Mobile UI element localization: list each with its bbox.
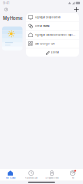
staticText: My Home <box>3 16 23 21</box>
staticText: Yo <box>72 176 74 179</box>
button[interactable]: Notifications <box>3 6 9 13</box>
button[interactable]: Agregar tarjeta de control rápido <box>26 31 79 39</box>
staticText: Automatizar <box>25 176 38 179</box>
button[interactable]: Leer código QR <box>26 39 79 48</box>
staticText: Crear escena <box>35 24 49 28</box>
button[interactable]: Add <box>73 6 80 13</box>
staticText: 9:41 <box>3 1 9 5</box>
button[interactable]: Crear escena <box>26 22 79 30</box>
button[interactable]: Automatizar <box>21 169 42 181</box>
button[interactable]: Agregar Dispositivo <box>26 13 79 21</box>
staticText: Editar <box>51 51 59 54</box>
button[interactable]: Dispositivos <box>41 169 62 181</box>
button[interactable]: Yo <box>62 169 83 181</box>
staticText: Agregar tarjeta de control rápido <box>35 33 76 36</box>
staticText: Mi Casa <box>6 176 15 179</box>
button[interactable]: My Home <box>3 15 23 22</box>
staticText: Dispositivos <box>45 176 58 179</box>
staticText: Agregar Dispositivo <box>35 16 61 19</box>
button[interactable]: Editar <box>26 48 79 57</box>
staticText: Leer código QR <box>35 42 55 45</box>
button[interactable]: Mi Casa <box>0 169 21 181</box>
